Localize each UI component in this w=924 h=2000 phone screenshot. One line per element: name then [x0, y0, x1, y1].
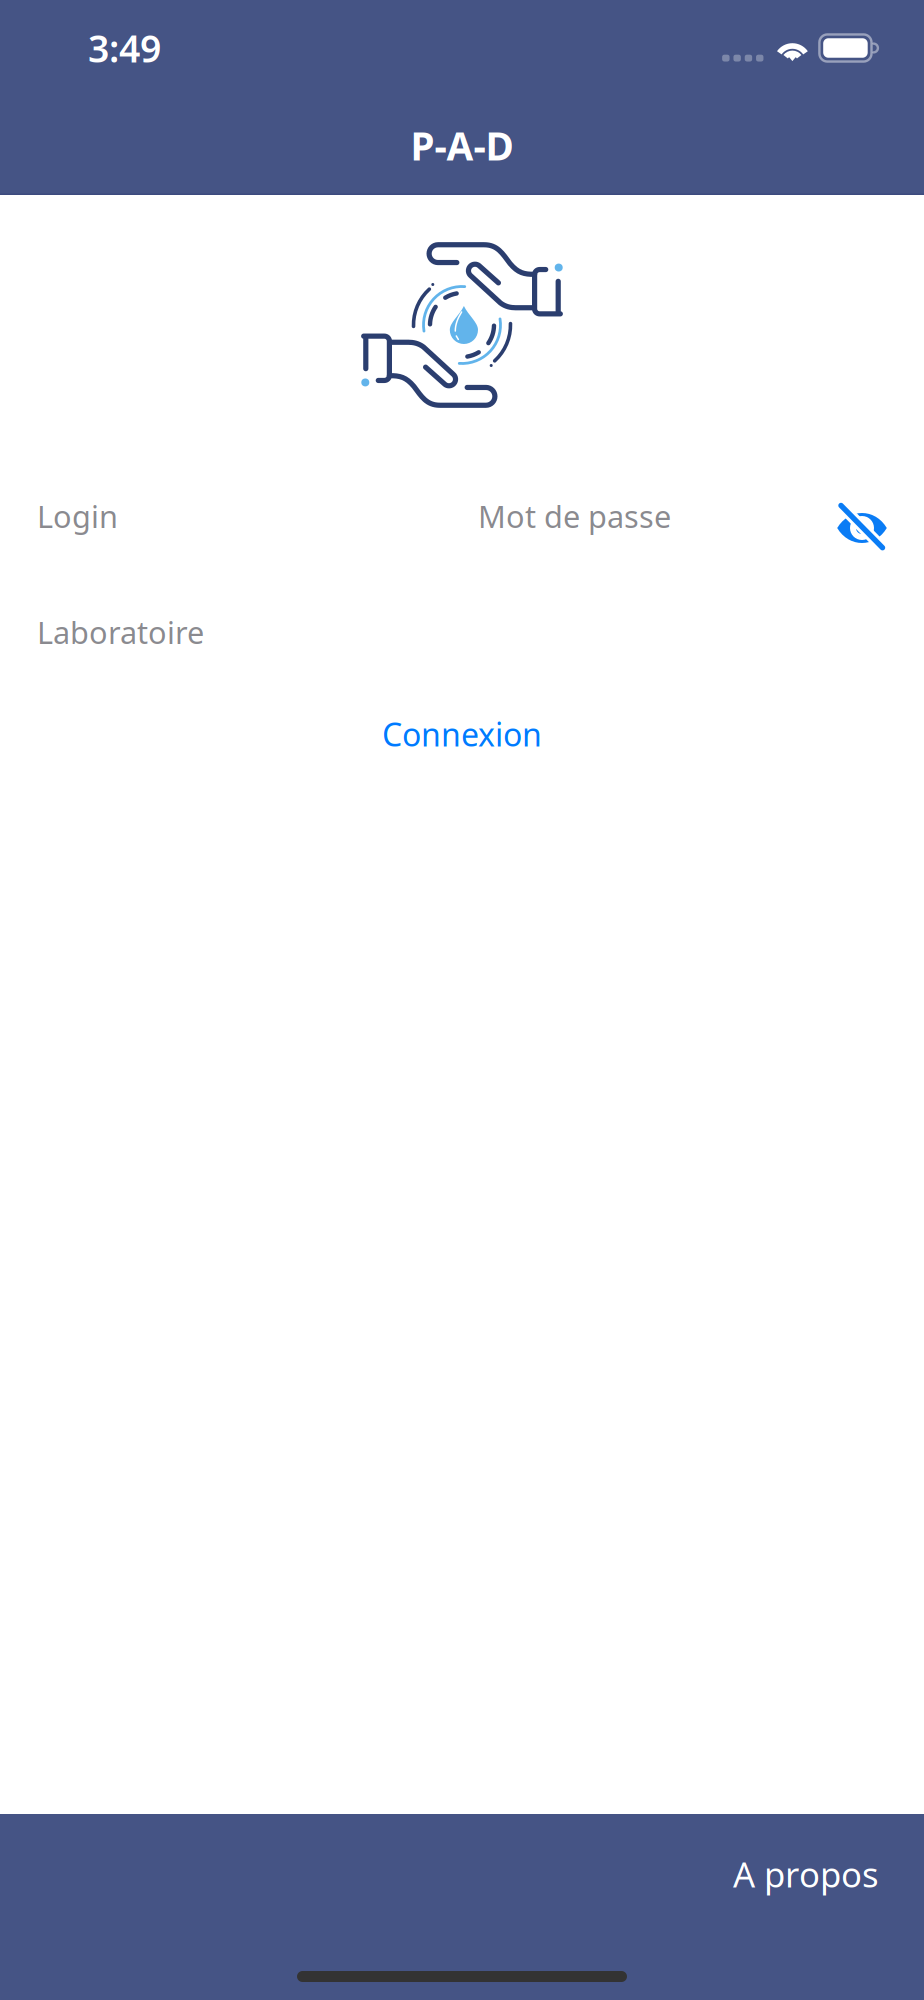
staticText: Connexion — [382, 713, 542, 755]
button[interactable]: Afficher le mot de passe — [836, 493, 888, 539]
button[interactable]: Login — [37, 487, 478, 545]
button[interactable]: Connexion — [0, 707, 924, 761]
staticText: Mot de passe — [478, 496, 671, 536]
staticText: Laboratoire — [37, 612, 204, 652]
button[interactable]: Laboratoire — [0, 603, 924, 661]
button[interactable]: Mot de passe — [478, 487, 796, 545]
staticText: P-A-D — [410, 120, 513, 171]
button[interactable]: A propos — [723, 1839, 889, 1909]
staticText: A propos — [733, 1851, 879, 1897]
staticText: 3:49 — [88, 23, 161, 73]
staticText: Login — [37, 496, 118, 536]
